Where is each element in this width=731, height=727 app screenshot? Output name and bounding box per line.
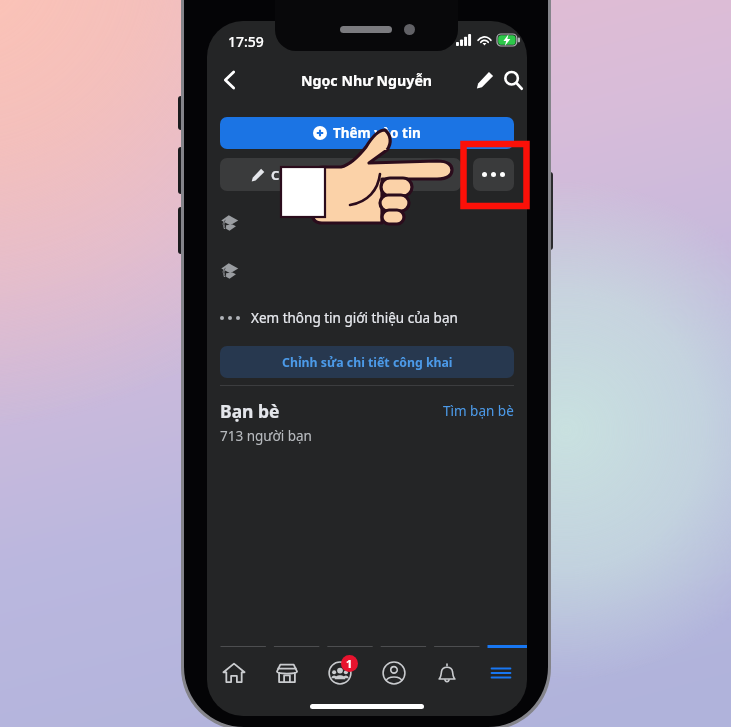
button[interactable]: Groups xyxy=(313,650,366,696)
button[interactable]: Home xyxy=(207,650,260,696)
button[interactable]: Thêm vào tin xyxy=(220,117,514,149)
button[interactable]: Chỉnh sửa chi tiết công khai xyxy=(220,346,514,378)
button[interactable]: Notifications xyxy=(420,650,473,696)
button[interactable]: Xem thông tin giới thiệu của bạn xyxy=(220,304,514,332)
staticText: Chỉnh sửa chi tiết công khai xyxy=(282,354,453,371)
button[interactable] xyxy=(220,207,514,237)
staticText: Thêm vào tin xyxy=(333,124,421,142)
button[interactable]: Search xyxy=(495,62,527,98)
button[interactable]: More options xyxy=(473,158,514,191)
staticText: Bạn bè xyxy=(220,399,280,423)
staticText: Ngọc Như Nguyễn xyxy=(301,71,433,90)
button[interactable]: Menu xyxy=(474,650,527,696)
button[interactable]: Chỉnh sửa trang cá nhân xyxy=(220,158,461,191)
button[interactable]: Back xyxy=(211,62,247,98)
button[interactable]: Profile xyxy=(367,650,420,696)
staticText: Chỉnh sửa trang cá nhân xyxy=(271,166,430,184)
button[interactable]: Edit xyxy=(467,62,503,98)
button[interactable] xyxy=(220,255,514,285)
staticText: Xem thông tin giới thiệu của bạn xyxy=(251,309,458,327)
staticText: 17:59 xyxy=(228,32,264,51)
button[interactable]: Tìm bạn bè xyxy=(443,402,514,420)
staticText: 1 xyxy=(346,656,353,671)
staticText: Tìm bạn bè xyxy=(443,402,514,420)
button[interactable]: Marketplace xyxy=(260,650,313,696)
staticText: 713 người bạn xyxy=(220,427,312,445)
